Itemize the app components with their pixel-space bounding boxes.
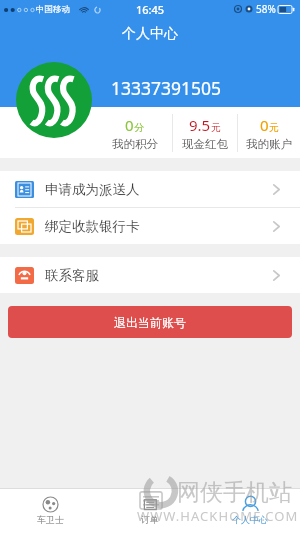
staticText: 我的账户 xyxy=(246,137,292,151)
button[interactable]: 联系客服 xyxy=(0,257,300,293)
staticText: 绑定收款银行卡 xyxy=(45,218,140,235)
staticText: 0 xyxy=(125,115,134,135)
staticText: 联系客服 xyxy=(45,267,99,284)
button[interactable]: 绑定收款银行卡 xyxy=(0,208,300,244)
button[interactable]: Avatar xyxy=(16,62,92,138)
staticText: 0 xyxy=(260,115,269,135)
button[interactable]: 9.5 xyxy=(173,107,237,158)
button[interactable]: 个人中心 xyxy=(200,488,300,533)
button[interactable]: 退出当前账号 xyxy=(8,306,292,338)
button[interactable]: 订单 xyxy=(100,488,200,533)
staticText: 现金红包 xyxy=(182,137,228,151)
staticText: 分 xyxy=(134,121,144,134)
staticText: 网侠手机站 xyxy=(177,478,292,507)
staticText: 58% xyxy=(256,2,276,16)
staticText: WWW.HACKHOME.COM xyxy=(137,507,299,525)
button[interactable]: 车卫士 xyxy=(0,488,100,533)
staticText: 元 xyxy=(269,121,279,134)
staticText: 订单 xyxy=(141,514,159,525)
staticText: 16:45 xyxy=(136,2,165,17)
staticText: 退出当前账号 xyxy=(114,315,186,330)
staticText: 申请成为派送人 xyxy=(45,181,140,198)
button[interactable]: 0 xyxy=(97,107,172,158)
button[interactable]: 申请成为派送人 xyxy=(0,171,300,207)
button[interactable]: 0 xyxy=(238,107,300,158)
staticText: 元 xyxy=(211,121,221,134)
staticText: 9.5 xyxy=(189,115,211,135)
staticText: 个人中心 xyxy=(232,514,268,525)
staticText: 中国移动 xyxy=(36,4,70,15)
staticText: 我的积分 xyxy=(112,137,158,151)
staticText: 13337391505 xyxy=(111,76,222,100)
staticText: 个人中心 xyxy=(122,25,178,43)
staticText: 车卫士 xyxy=(37,514,64,525)
